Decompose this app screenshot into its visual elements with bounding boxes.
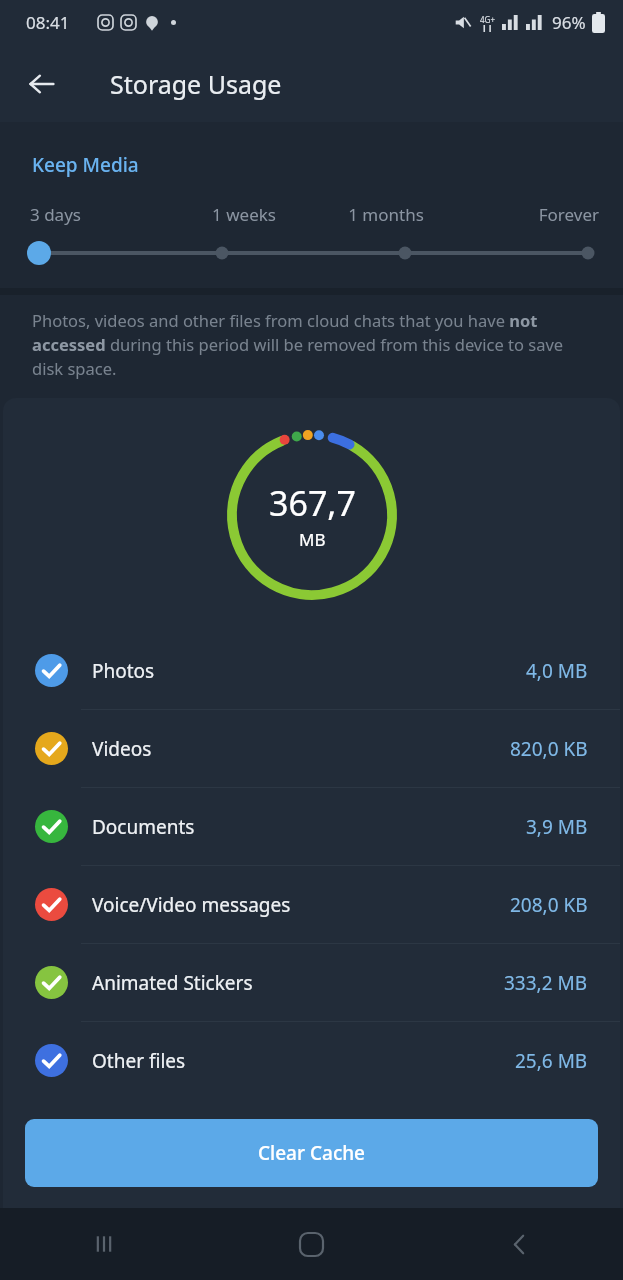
button[interactable]: Documents — [3, 788, 620, 866]
button[interactable]: Back — [18, 60, 66, 108]
button[interactable]: Videos — [3, 710, 620, 788]
staticText: Photos, videos and other files from clou… — [32, 309, 583, 380]
staticText: 333,2 MB — [504, 970, 588, 996]
staticText: Storage Usage — [110, 67, 282, 101]
staticText: 96% — [552, 11, 586, 34]
button[interactable] — [30, 240, 593, 266]
staticText: Clear Cache — [258, 1140, 366, 1166]
staticText: Voice/Video messages — [92, 892, 510, 918]
staticText: 25,6 MB — [515, 1048, 588, 1074]
staticText: 4G+ — [480, 14, 495, 25]
staticText: 367,7 — [269, 480, 356, 526]
staticText: Forever — [457, 203, 599, 226]
staticText: 208,0 KB — [510, 892, 588, 918]
button[interactable]: Back — [415, 1208, 623, 1280]
staticText: 1 months — [315, 203, 457, 226]
staticText: Documents — [92, 814, 526, 840]
staticText: Videos — [92, 736, 510, 762]
button[interactable]: Animated Stickers — [3, 944, 620, 1022]
button[interactable]: Home — [207, 1208, 415, 1280]
staticText: MB — [299, 528, 326, 551]
staticText: 4,0 MB — [526, 658, 588, 684]
button[interactable]: Recent apps — [0, 1208, 207, 1280]
staticText: 3 days — [30, 203, 173, 226]
staticText: Keep Media — [32, 152, 139, 178]
staticText: 08:41 — [26, 11, 70, 34]
staticText: Other files — [92, 1048, 515, 1074]
staticText: Photos — [92, 658, 526, 684]
button[interactable]: Photos — [3, 632, 620, 710]
button[interactable]: Clear Cache — [25, 1119, 598, 1187]
staticText: 1 weeks — [173, 203, 315, 226]
staticText: 3,9 MB — [526, 814, 588, 840]
button[interactable]: Voice/Video messages — [3, 866, 620, 944]
staticText: 820,0 KB — [510, 736, 588, 762]
button[interactable]: Other files — [3, 1022, 620, 1099]
staticText: Animated Stickers — [92, 970, 504, 996]
